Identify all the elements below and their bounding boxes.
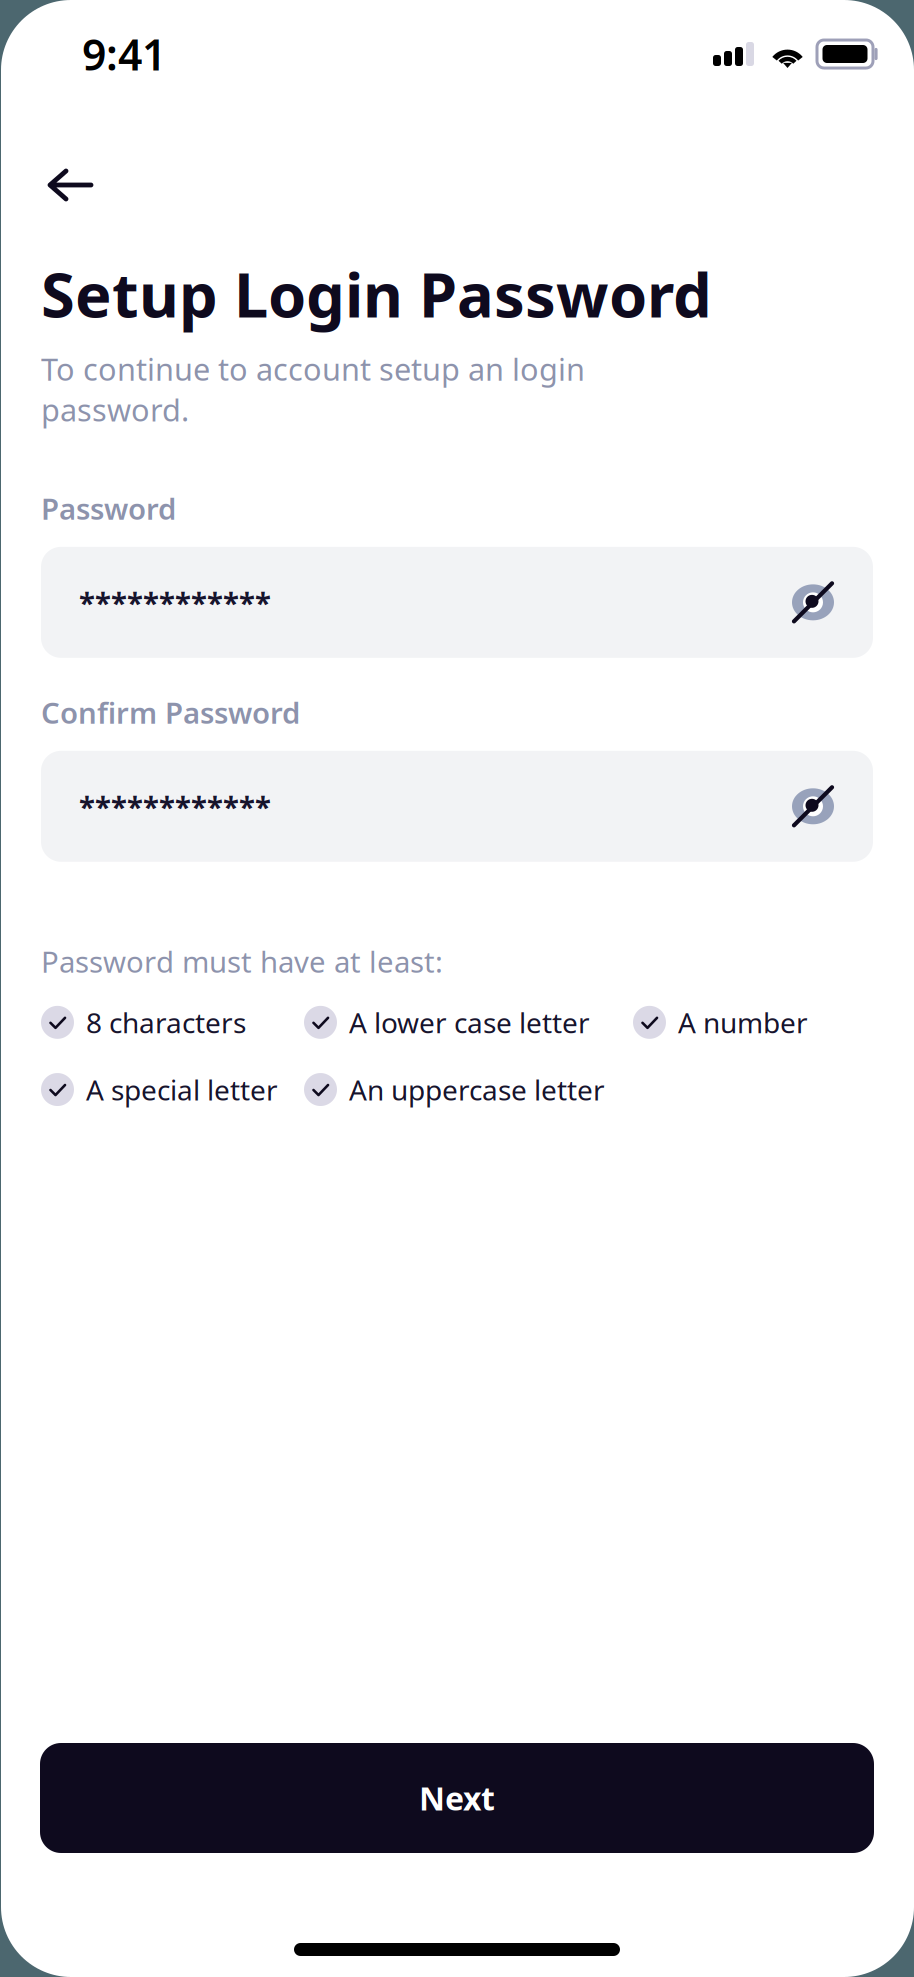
staticText: A number bbox=[678, 1004, 808, 1041]
staticText: Next bbox=[419, 1777, 495, 1819]
staticText: A special letter bbox=[86, 1071, 278, 1108]
staticText: To continue to account setup an login pa… bbox=[41, 348, 585, 430]
staticText: Password bbox=[41, 489, 176, 528]
staticText: 8 characters bbox=[86, 1004, 246, 1041]
staticText: ************ bbox=[79, 583, 271, 622]
button[interactable]: Back bbox=[0, 108, 118, 215]
staticText: ************ bbox=[79, 787, 271, 826]
staticText: A lower case letter bbox=[349, 1004, 590, 1041]
button[interactable]: Show password bbox=[791, 580, 835, 624]
staticText: Confirm Password bbox=[41, 693, 300, 732]
staticText: Setup Login Password bbox=[41, 253, 712, 334]
button[interactable]: Next bbox=[40, 1743, 874, 1853]
button[interactable]: Show password bbox=[791, 784, 835, 828]
staticText: 9:41 bbox=[82, 26, 166, 82]
staticText: Password must have at least: bbox=[41, 942, 443, 981]
staticText: An uppercase letter bbox=[349, 1071, 605, 1108]
